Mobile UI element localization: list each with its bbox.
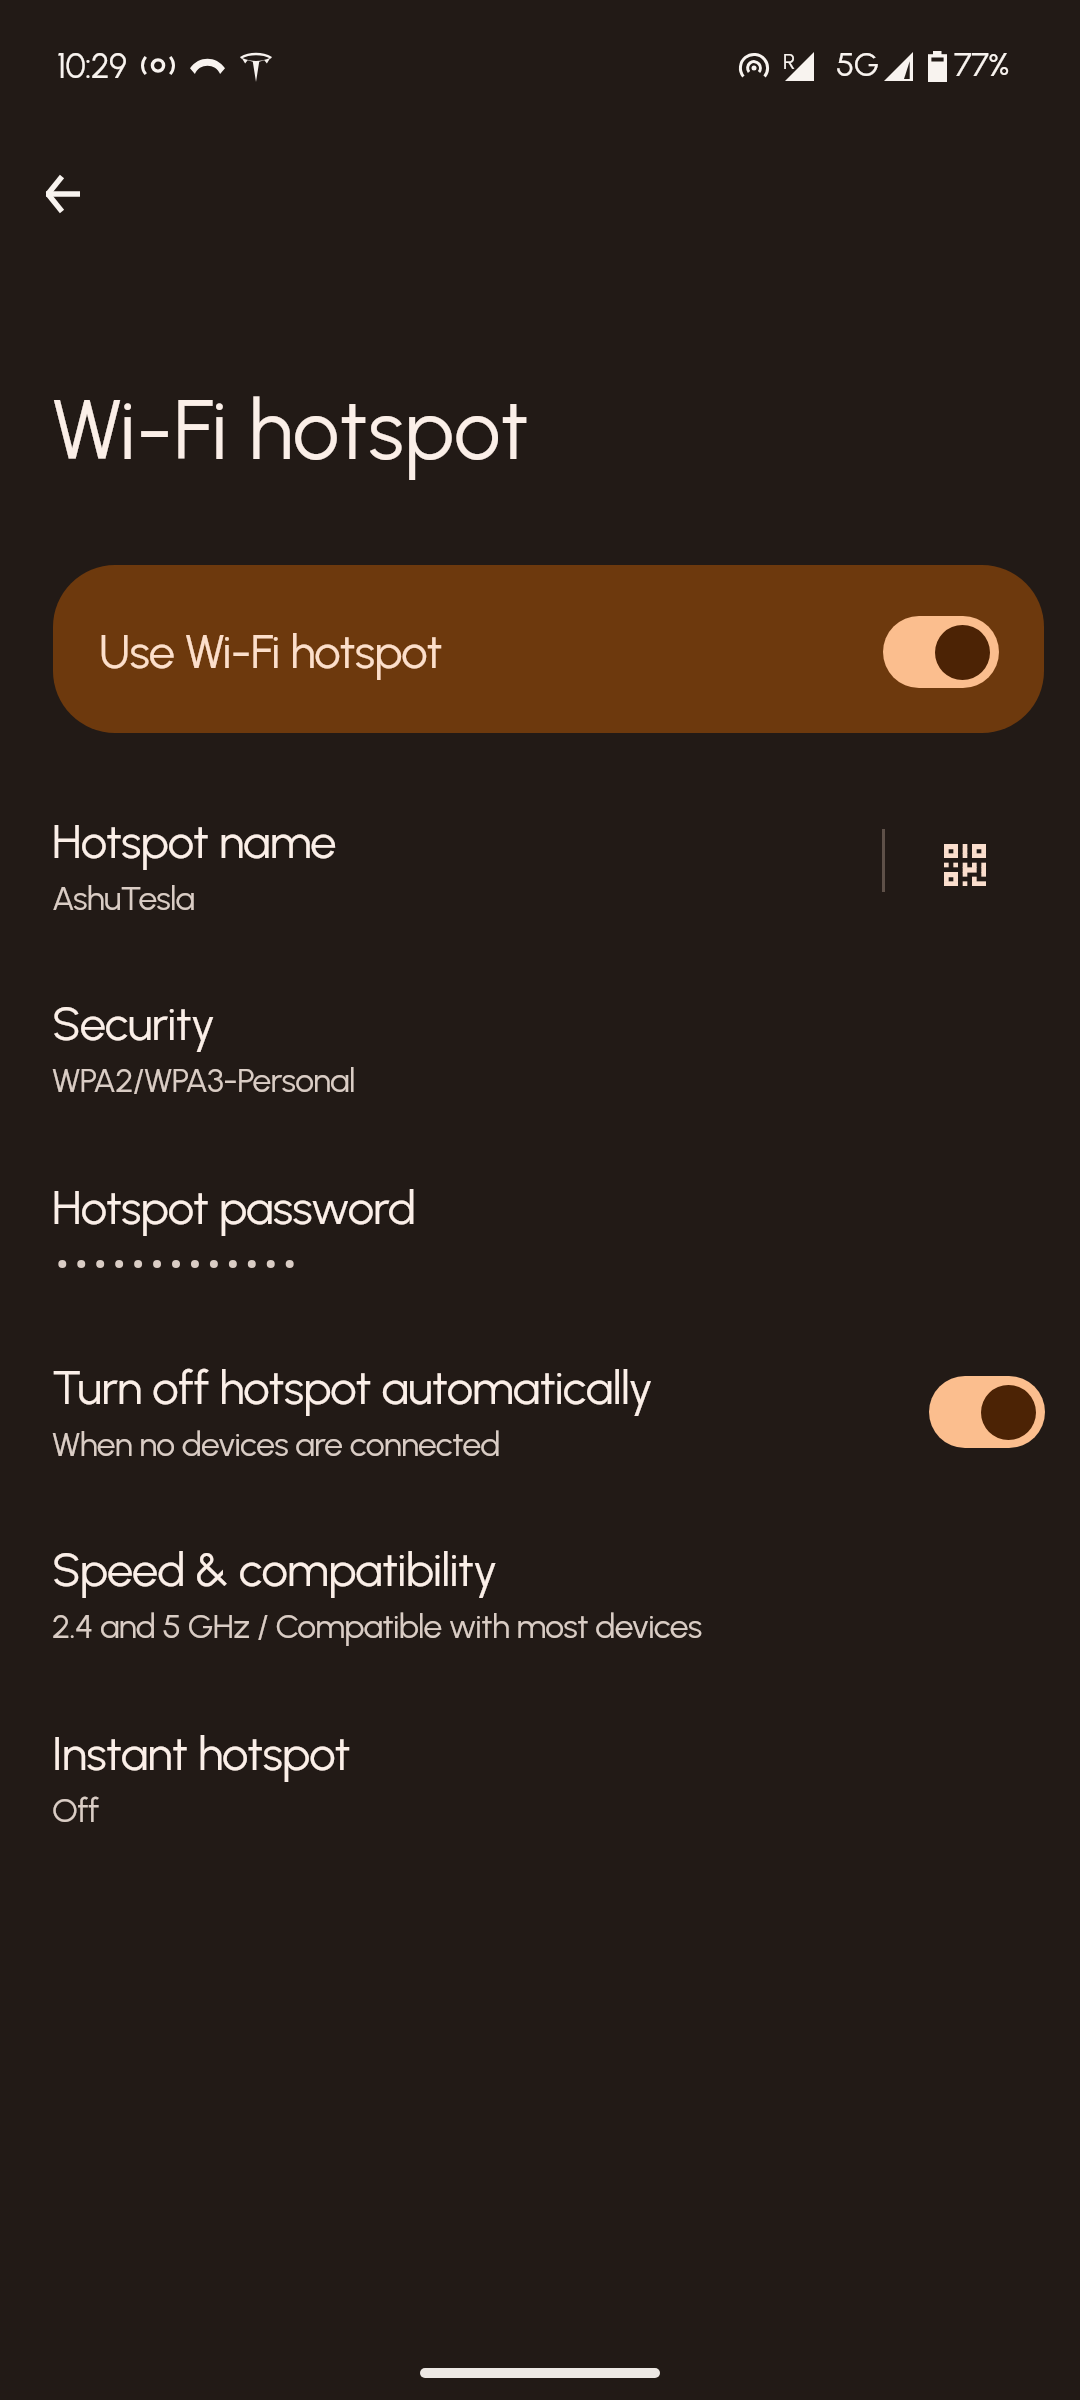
button[interactable]: Toggle: [929, 1376, 1045, 1448]
button[interactable]: Share hotspot QR code: [906, 800, 1024, 930]
button[interactable]: Use Wi-Fi hotspot: [53, 565, 1044, 733]
staticText: 77%: [954, 45, 1010, 85]
button[interactable]: Hotspot name: [0, 769, 1080, 951]
staticText: Turn off hotspot automatically: [52, 1359, 653, 1415]
staticText: AshuTesla: [52, 878, 195, 918]
staticText: Off: [52, 1790, 99, 1830]
staticText: 5G: [836, 45, 879, 85]
staticText: Security: [52, 995, 215, 1051]
button[interactable]: Security: [0, 951, 1080, 1133]
button[interactable]: Navigate up: [14, 146, 110, 242]
staticText: Hotspot password: [52, 1179, 416, 1235]
staticText: R: [783, 48, 795, 74]
staticText: Hotspot name: [52, 813, 336, 869]
staticText: 2.4 and 5 GHz / Compatible with most dev…: [52, 1606, 702, 1646]
button[interactable]: Toggle: [883, 616, 999, 688]
staticText: WPA2/WPA3-Personal: [52, 1060, 355, 1100]
staticText: When no devices are connected: [52, 1424, 500, 1464]
staticText: Instant hotspot: [52, 1725, 350, 1781]
button[interactable]: Hotspot password: [0, 1135, 1080, 1317]
staticText: Wi-Fi hotspot: [52, 380, 530, 480]
button[interactable]: Turn off hotspot automatically: [0, 1315, 1080, 1497]
staticText: Speed & compatibility: [52, 1541, 497, 1597]
staticText: Use Wi-Fi hotspot: [99, 623, 442, 679]
staticText: 10:29: [57, 46, 127, 87]
button[interactable]: Instant hotspot: [0, 1681, 1080, 1863]
button[interactable]: Speed & compatibility: [0, 1497, 1080, 1679]
